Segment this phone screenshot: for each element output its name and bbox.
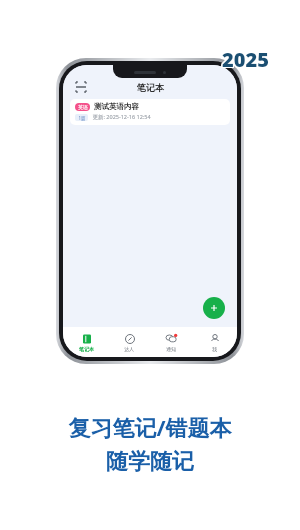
staticText: 2025 <box>221 46 268 73</box>
staticText: 英语 <box>78 104 88 110</box>
button[interactable]: Scan <box>72 78 90 96</box>
button[interactable]: 我 <box>195 327 233 357</box>
staticText: 测试英语内容 <box>94 102 139 111</box>
button[interactable]: Add note <box>203 297 225 319</box>
staticText: 2025 <box>222 45 269 72</box>
staticText: 笔记本 <box>79 346 94 352</box>
button[interactable]: 通知 <box>152 327 190 357</box>
staticText: 我 <box>212 346 217 352</box>
staticText: 2025 <box>223 45 270 72</box>
staticText: 复习笔记/错题本 <box>68 412 232 442</box>
staticText: 1篇 <box>78 115 86 121</box>
staticText: 2025 <box>221 45 268 72</box>
button[interactable]: 达人 <box>110 327 148 357</box>
staticText: 2025 <box>221 47 268 74</box>
staticText: 通知 <box>166 346 176 352</box>
staticText: 2025 <box>222 46 269 73</box>
button[interactable]: 英语 <box>70 99 230 125</box>
staticText: 笔记本 <box>137 82 164 93</box>
staticText: 2025 <box>223 47 270 74</box>
staticText: 更新: 2025-12-16 12:54 <box>92 113 151 121</box>
staticText: 2025 <box>222 47 269 74</box>
staticText: 达人 <box>124 346 134 352</box>
button[interactable]: 笔记本 <box>67 327 105 357</box>
staticText: 随学随记 <box>106 448 194 476</box>
staticText: 2025 <box>223 46 270 73</box>
